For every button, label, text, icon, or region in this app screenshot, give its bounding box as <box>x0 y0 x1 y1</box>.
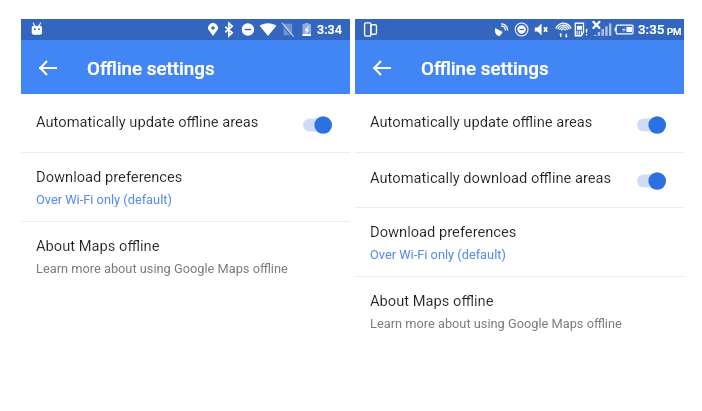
staticText: About Maps offline <box>36 237 160 254</box>
staticText: Offline settings <box>87 58 215 80</box>
staticText: PM <box>667 26 682 37</box>
button[interactable]: About Maps offline <box>21 222 350 290</box>
staticText: Download preferences <box>370 223 517 240</box>
staticText: About Maps offline <box>370 292 494 309</box>
staticText: Automatically update offline areas <box>370 113 593 130</box>
staticText: Automatically download offline areas <box>370 169 612 186</box>
staticText: Over Wi-Fi only (default) <box>36 192 172 207</box>
staticText: 3:34 <box>317 22 342 37</box>
button[interactable]: Automatically update offline areas <box>21 94 350 152</box>
staticText: Automatically update offline areas <box>36 113 259 130</box>
button[interactable]: About Maps offline <box>355 277 684 345</box>
staticText: Learn more about using Google Maps offli… <box>370 316 622 331</box>
staticText: Offline settings <box>421 58 549 80</box>
button[interactable]: Automatically update offline areas <box>355 94 684 152</box>
staticText: Download preferences <box>36 168 183 185</box>
staticText: Over Wi-Fi only (default) <box>370 247 506 262</box>
button[interactable]: Back <box>28 48 68 88</box>
staticText: 3:35 <box>638 22 665 38</box>
button[interactable]: Download preferences <box>21 153 350 221</box>
button[interactable]: Download preferences <box>355 208 684 276</box>
button[interactable]: Back <box>362 48 402 88</box>
button[interactable]: Automatically download offline areas <box>355 153 684 207</box>
staticText: Learn more about using Google Maps offli… <box>36 261 288 276</box>
